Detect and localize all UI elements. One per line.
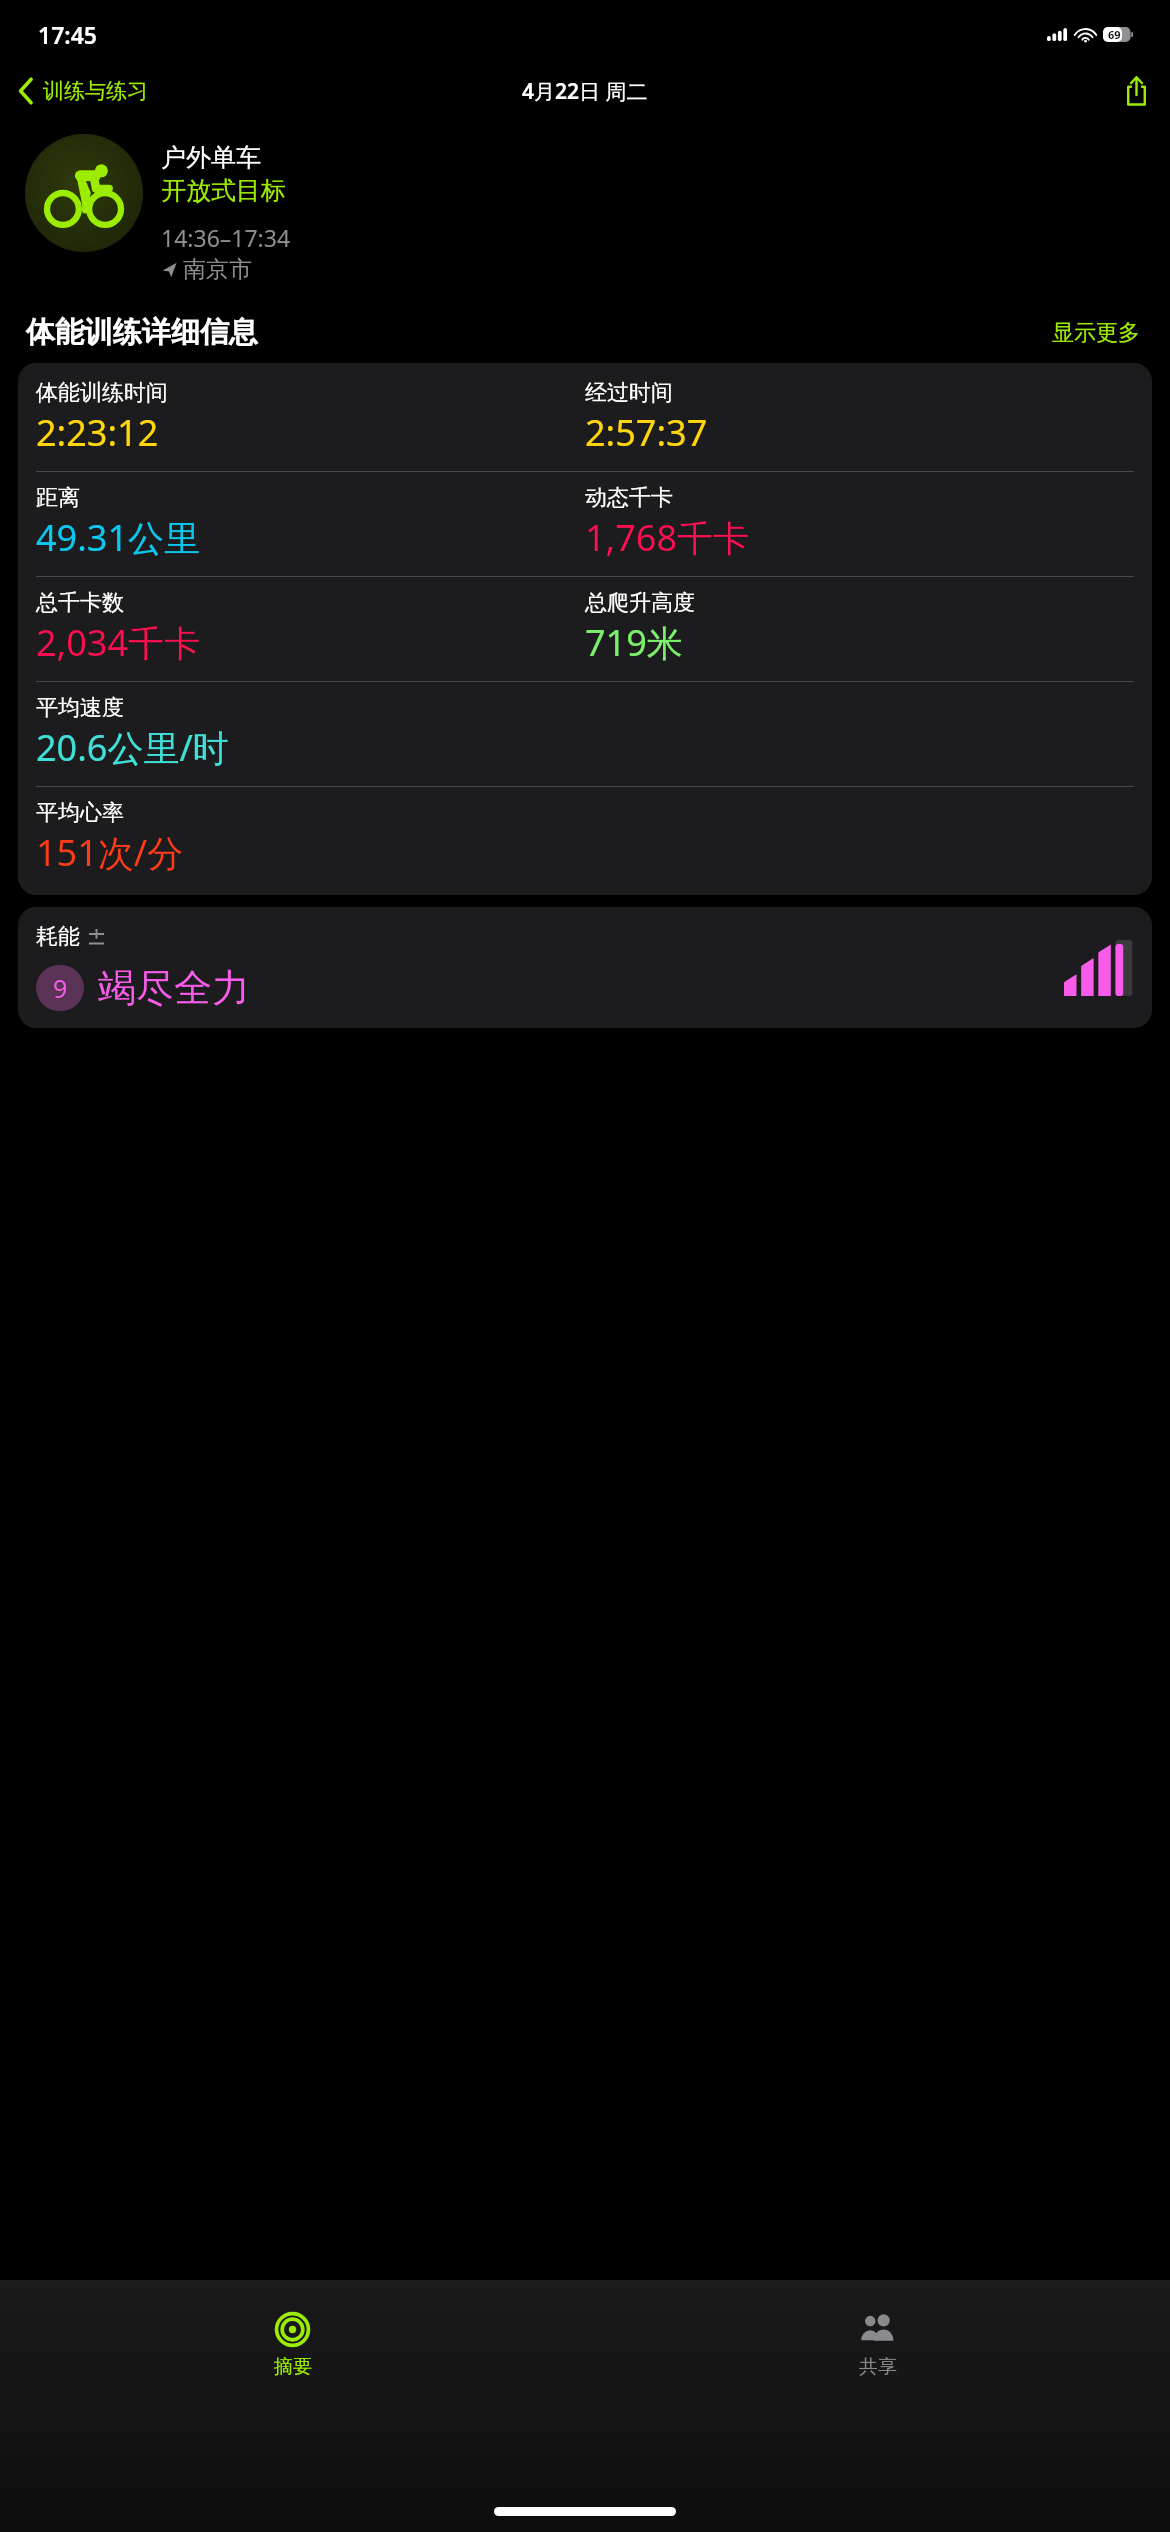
staticText: 2:57:37 [585, 408, 708, 457]
staticText: 竭尽全力 [98, 964, 250, 1012]
staticText: 719米 [585, 618, 683, 667]
button[interactable]: 耗能 [18, 907, 1152, 1028]
staticText: 共享 [859, 2355, 897, 2379]
staticText: 总爬升高度 [585, 589, 695, 617]
button[interactable]: 显示更多 [1048, 315, 1144, 351]
staticText: 经过时间 [585, 379, 673, 407]
button[interactable]: 体能训练时间 [18, 363, 1152, 895]
staticText: 显示更多 [1052, 319, 1140, 347]
staticText: 体能训练时间 [36, 379, 168, 407]
staticText: 总千卡数 [36, 589, 124, 617]
staticText: 2:23:12 [36, 408, 159, 457]
staticText: 9 [53, 971, 68, 1005]
button[interactable]: 训练与练习 [0, 71, 158, 111]
staticText: 2,034千卡 [36, 618, 201, 667]
staticText: 49.31公里 [36, 513, 201, 562]
staticText: 动态千卡 [585, 484, 673, 512]
button[interactable]: 共享 [585, 2308, 1170, 2383]
staticText: 训练与练习 [43, 78, 148, 104]
staticText: 距离 [36, 484, 80, 512]
staticText: 平均心率 [36, 799, 124, 827]
button[interactable]: Share [1103, 70, 1170, 112]
staticText: 摘要 [274, 2355, 312, 2379]
staticText: 平均速度 [36, 694, 124, 722]
staticText: 14:36–17:34 [161, 222, 291, 253]
staticText: 1,768千卡 [585, 513, 750, 562]
staticText: 17:45 [38, 19, 97, 50]
staticText: 南京市 [183, 255, 252, 284]
staticText: 151次/分 [36, 828, 184, 877]
staticText: 20.6公里/时 [36, 723, 229, 772]
staticText: 户外单车 [161, 142, 261, 173]
staticText: 开放式目标 [161, 175, 286, 206]
staticText: 体能训练详细信息 [26, 314, 258, 351]
button[interactable]: 摘要 [0, 2308, 585, 2383]
staticText: 耗能 [36, 923, 80, 951]
staticText: 69 [1108, 27, 1121, 42]
staticText: 4月22日 周二 [522, 77, 648, 106]
